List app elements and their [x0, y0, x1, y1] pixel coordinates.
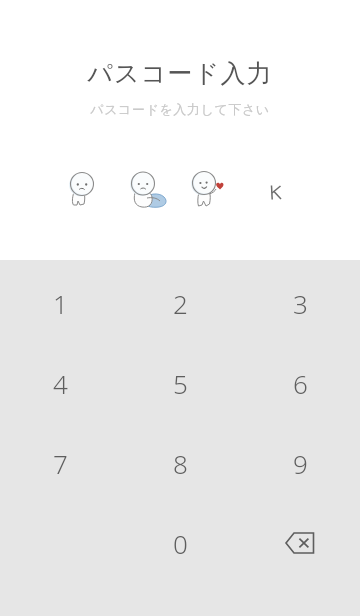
button[interactable]: 7: [0, 423, 120, 503]
button[interactable]: Backspace: [240, 503, 360, 583]
staticText: 1: [53, 286, 68, 321]
button[interactable]: 0: [120, 503, 240, 583]
button[interactable]: 2: [120, 263, 240, 343]
staticText: 0: [173, 526, 188, 561]
staticText: パスコード入力: [87, 58, 273, 89]
button[interactable]: 9: [240, 423, 360, 503]
button[interactable]: 8: [120, 423, 240, 503]
staticText: 5: [173, 366, 188, 401]
staticText: 7: [53, 446, 68, 481]
button[interactable]: 4: [0, 343, 120, 423]
staticText: 2: [173, 286, 188, 321]
button[interactable]: 3: [240, 263, 360, 343]
button[interactable]: 1: [0, 263, 120, 343]
button[interactable]: 6: [240, 343, 360, 423]
staticText: 9: [293, 446, 308, 481]
button[interactable]: 5: [120, 343, 240, 423]
staticText: パスコードを入力して下さい: [90, 101, 270, 117]
staticText: 6: [293, 366, 308, 401]
staticText: 3: [293, 286, 308, 321]
staticText: 8: [173, 446, 188, 481]
staticText: 4: [53, 366, 68, 401]
